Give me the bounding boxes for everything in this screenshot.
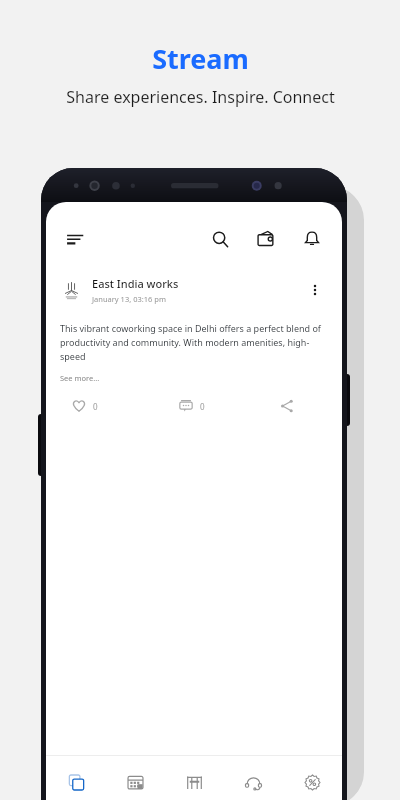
button[interactable]: Offers [283, 756, 342, 800]
staticText: 0 [200, 401, 205, 412]
staticText: This vibrant coworking space in Delhi of… [60, 322, 328, 363]
button[interactable]: 0 [64, 399, 157, 413]
button[interactable]: 0 [157, 399, 250, 413]
button[interactable]: Share [250, 399, 324, 413]
staticText: Stream [152, 40, 249, 77]
button[interactable]: Menu [60, 224, 90, 254]
staticText: January 13, 03:16 pm [92, 294, 166, 304]
staticText: East India works [92, 276, 179, 291]
staticText: 0 [93, 401, 98, 412]
button[interactable]: Wallet [250, 224, 282, 254]
staticText: Share experiences. Inspire. Connect [66, 86, 335, 108]
button[interactable]: Spaces [165, 756, 224, 800]
button[interactable]: Calendar [106, 756, 165, 800]
button[interactable]: More options [302, 277, 328, 303]
staticText: See more... [60, 373, 100, 383]
button[interactable]: See more... [60, 373, 100, 383]
button[interactable]: Notifications [296, 224, 328, 254]
button[interactable]: Support [224, 756, 283, 800]
button[interactable]: Search [204, 224, 236, 254]
button[interactable]: Posts [46, 756, 106, 800]
